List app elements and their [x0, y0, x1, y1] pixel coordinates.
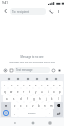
button[interactable]: Toolbar 4: [44, 76, 49, 81]
button[interactable]: l: [55, 95, 61, 102]
staticText: n: [44, 104, 46, 108]
staticText: q: [4, 90, 6, 94]
button[interactable]: Add: [2, 67, 8, 73]
button[interactable]: Backspace: [54, 102, 63, 109]
button[interactable]: Call: [46, 7, 55, 16]
button[interactable]: a: [3, 95, 10, 102]
button[interactable]: h: [37, 95, 43, 102]
staticText: 5: [29, 83, 31, 86]
button[interactable]: u: [39, 88, 45, 95]
button[interactable]: 3: [15, 81, 21, 88]
staticText: 2: [11, 83, 13, 86]
button[interactable]: 1: [1, 81, 8, 88]
staticText: k: [51, 97, 53, 101]
button[interactable]: f: [24, 95, 31, 102]
staticText: English: [28, 112, 36, 115]
button[interactable]: d: [17, 95, 24, 102]
button[interactable]: Back: [11, 119, 18, 126]
button[interactable]: i: [45, 88, 51, 95]
staticText: m: [50, 104, 53, 108]
staticText: 9: [53, 83, 55, 86]
button[interactable]: r: [21, 88, 27, 95]
button[interactable]: g: [31, 95, 37, 102]
button[interactable]: Back: [2, 7, 10, 15]
button[interactable]: 0: [57, 81, 63, 88]
staticText: g: [33, 97, 35, 101]
button[interactable]: Recents: [46, 119, 53, 126]
staticText: 0: [59, 83, 61, 86]
staticText: v: [32, 104, 34, 108]
staticText: z: [14, 104, 16, 108]
staticText: i: [48, 90, 49, 94]
staticText: 4: [23, 83, 25, 86]
button[interactable]: Gallery: [8, 67, 14, 73]
button[interactable]: k: [49, 95, 55, 102]
button[interactable]: t: [27, 88, 33, 95]
staticText: f: [27, 97, 28, 101]
staticText: s: [13, 97, 15, 101]
button[interactable]: Text message: [14, 67, 50, 73]
staticText: p: [59, 90, 61, 94]
button[interactable]: Toolbar 5: [53, 76, 58, 81]
button[interactable]: Send: [56, 67, 62, 73]
staticText: 9:41: [2, 1, 8, 5]
button[interactable]: s: [10, 95, 17, 102]
button[interactable]: 6: [33, 81, 39, 88]
button[interactable]: z: [11, 102, 18, 109]
staticText: t: [29, 90, 31, 94]
button[interactable]: Toolbar 0: [6, 76, 11, 81]
button[interactable]: Enter: [53, 109, 63, 117]
button[interactable]: n: [42, 102, 48, 109]
button[interactable]: Switch language: [1, 109, 11, 117]
staticText: o: [53, 90, 55, 94]
button[interactable]: 8: [45, 81, 51, 88]
button[interactable]: w: [8, 88, 15, 95]
button[interactable]: j: [43, 95, 49, 102]
button[interactable]: Space: [18, 109, 46, 117]
staticText: d: [20, 97, 22, 101]
button[interactable]: 9: [51, 81, 57, 88]
button[interactable]: Toolbar 3: [34, 76, 39, 81]
button[interactable]: 4: [21, 81, 27, 88]
button[interactable]: Emoji: [50, 67, 56, 73]
button[interactable]: 7: [39, 81, 45, 88]
staticText: l: [58, 97, 59, 101]
staticText: 8: [47, 83, 49, 86]
staticText: b: [38, 104, 40, 108]
button[interactable]: More options: [55, 8, 62, 15]
staticText: c: [26, 104, 28, 108]
button[interactable]: 2: [8, 81, 15, 88]
button[interactable]: Toolbar 2: [25, 76, 30, 81]
button[interactable]: m: [48, 102, 54, 109]
staticText: 3: [17, 83, 19, 86]
button[interactable]: p: [57, 88, 63, 95]
staticText: r: [23, 90, 25, 94]
button[interactable]: Shift: [1, 102, 11, 109]
button[interactable]: Toolbar 1: [15, 76, 20, 81]
staticText: 1: [4, 83, 6, 86]
button[interactable]: ,: [11, 109, 18, 117]
staticText: h: [39, 97, 41, 101]
staticText: w: [10, 90, 13, 94]
button[interactable]: v: [30, 102, 36, 109]
staticText: Messages sent are not encrypted end to e…: [6, 61, 58, 64]
staticText: Text message: [16, 68, 33, 72]
button[interactable]: c: [24, 102, 30, 109]
staticText: a: [6, 97, 8, 101]
staticText: 7: [41, 83, 43, 86]
button[interactable]: e: [15, 88, 21, 95]
staticText: ,: [14, 111, 15, 115]
staticText: j: [46, 97, 47, 101]
button[interactable]: 5: [27, 81, 33, 88]
button[interactable]: To: recipient: [10, 8, 46, 15]
button[interactable]: x: [18, 102, 24, 109]
button[interactable]: o: [51, 88, 57, 95]
button[interactable]: Home: [29, 119, 36, 126]
button[interactable]: b: [36, 102, 42, 109]
staticText: 6: [35, 83, 37, 86]
staticText: y: [35, 90, 37, 94]
button[interactable]: q: [1, 88, 8, 95]
button[interactable]: y: [33, 88, 39, 95]
staticText: To: recipient: [12, 10, 30, 14]
